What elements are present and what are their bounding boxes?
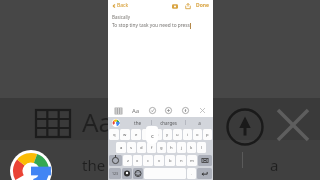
button[interactable]: Done <box>195 2 210 9</box>
button[interactable]: e <box>131 129 141 140</box>
staticText: h <box>170 145 173 151</box>
button[interactable]: b <box>165 155 175 166</box>
button[interactable]: Share <box>183 1 192 10</box>
button[interactable]: check <box>147 105 158 116</box>
staticText: b <box>169 158 172 164</box>
button[interactable]: q <box>109 129 119 140</box>
button[interactable]: h <box>167 142 176 153</box>
button[interactable]: Close <box>197 105 208 116</box>
button[interactable]: Table <box>113 105 124 116</box>
staticText: Back <box>117 2 129 9</box>
staticText: Basically <box>112 14 131 20</box>
button[interactable]: g <box>157 142 166 153</box>
staticText: z <box>127 158 129 164</box>
button[interactable]: . <box>187 168 196 179</box>
button[interactable]: r <box>142 129 152 140</box>
button[interactable]: Backspace <box>198 155 212 166</box>
staticText: j <box>181 145 183 151</box>
staticText: the <box>134 120 141 126</box>
button[interactable]: Back <box>111 2 130 9</box>
staticText: the <box>82 155 106 175</box>
staticText: y <box>166 132 169 138</box>
button[interactable]: Markup pen <box>180 105 191 116</box>
staticText: To stop tiny task you need to press <box>112 22 190 29</box>
staticText: n <box>180 158 183 164</box>
staticText: a <box>120 145 123 151</box>
staticText: q <box>113 132 116 138</box>
button[interactable]: s <box>127 142 136 153</box>
button[interactable]: d <box>137 142 146 153</box>
button[interactable]: l <box>197 142 206 153</box>
staticText: Done <box>196 2 209 9</box>
button[interactable]: k <box>187 142 196 153</box>
button[interactable]: Add <box>163 105 174 116</box>
button[interactable]: Markup <box>170 1 179 10</box>
staticText: a <box>270 155 279 175</box>
button[interactable]: a <box>116 142 126 153</box>
staticText: a <box>198 120 201 126</box>
staticText: Aa <box>82 104 114 139</box>
button[interactable]: c <box>143 155 153 166</box>
button[interactable]: n <box>176 155 186 166</box>
staticText: t <box>157 132 159 138</box>
staticText: k <box>190 145 193 151</box>
button[interactable]: the <box>124 117 151 128</box>
staticText: c <box>151 132 154 140</box>
button[interactable]: Voice input <box>122 168 132 179</box>
button[interactable]: a <box>186 117 213 128</box>
staticText: v <box>158 158 161 164</box>
button[interactable]: Shift <box>109 155 122 166</box>
button[interactable]: Aa <box>130 105 141 116</box>
staticText: g <box>160 145 163 151</box>
button[interactable]: p <box>203 129 212 140</box>
button[interactable]: m <box>187 155 197 166</box>
button[interactable]: w <box>120 129 130 140</box>
staticText: Aa <box>132 107 140 115</box>
staticText: e <box>135 132 138 138</box>
staticText: l <box>201 145 203 151</box>
button[interactable]: z <box>123 155 132 166</box>
button[interactable]: u <box>173 129 182 140</box>
button[interactable]: 123 <box>109 168 121 179</box>
staticText: u <box>176 132 179 138</box>
button[interactable]: Emoji <box>133 168 143 179</box>
staticText: 123 <box>112 171 119 176</box>
button[interactable]: i <box>183 129 192 140</box>
staticText: . <box>191 171 193 176</box>
staticText: f <box>151 145 153 151</box>
staticText: w <box>123 132 127 138</box>
button[interactable]: y <box>163 129 172 140</box>
staticText: i <box>187 132 189 138</box>
staticText: m <box>190 158 194 164</box>
button[interactable]: j <box>177 142 186 153</box>
staticText: s <box>130 145 133 151</box>
button[interactable]: Enter <box>197 168 212 179</box>
button[interactable]: x <box>133 155 142 166</box>
button[interactable]: t <box>153 129 162 140</box>
button[interactable]: v <box>154 155 164 166</box>
staticText: o <box>196 132 199 138</box>
staticText: d <box>140 145 143 151</box>
button[interactable]: o <box>193 129 202 140</box>
staticText: charges <box>160 120 177 126</box>
button[interactable]: Google <box>108 117 124 128</box>
staticText: p <box>206 132 209 138</box>
button[interactable]: charges <box>152 117 185 128</box>
button[interactable]: f <box>147 142 156 153</box>
staticText: x <box>136 158 139 164</box>
staticText: c <box>147 158 150 164</box>
